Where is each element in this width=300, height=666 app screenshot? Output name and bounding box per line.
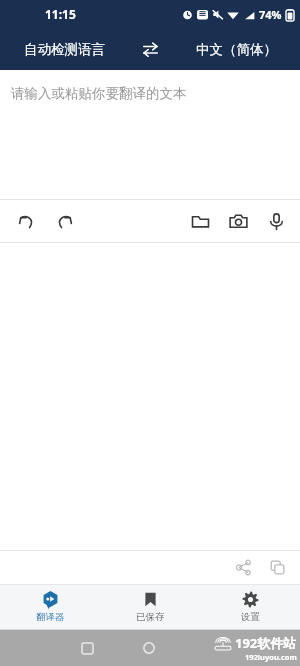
button[interactable]: Voice input <box>257 202 295 240</box>
staticText: 192luyou.com <box>245 652 297 662</box>
staticText: 中文（简体） <box>196 41 277 58</box>
button[interactable]: 中文（简体） <box>172 28 300 70</box>
button[interactable]: Open file <box>181 202 219 240</box>
staticText: 自动检测语言 <box>24 41 105 58</box>
button[interactable]: Copy <box>260 551 294 584</box>
button[interactable]: Redo <box>45 202 83 240</box>
button[interactable]: 请输入或粘贴你要翻译的文本 <box>0 70 300 199</box>
staticText: 翻译器 <box>36 611 65 623</box>
button[interactable]: Recents <box>82 643 93 654</box>
button[interactable]: Share <box>226 551 260 584</box>
button[interactable]: 自动检测语言 <box>0 28 128 70</box>
button[interactable]: Swap languages <box>128 28 172 70</box>
staticText: 192软件站 <box>235 634 297 652</box>
button[interactable]: 已保存 <box>100 585 200 629</box>
button[interactable]: Undo <box>7 202 45 240</box>
staticText: 74% <box>259 7 282 22</box>
staticText: 请输入或粘贴你要翻译的文本 <box>11 85 187 102</box>
staticText: 11:15 <box>45 6 76 22</box>
button[interactable]: Home <box>143 642 155 654</box>
staticText: 设置 <box>241 611 260 623</box>
button[interactable]: Camera <box>219 202 257 240</box>
button[interactable]: 翻译器 <box>0 585 100 629</box>
staticText: 已保存 <box>136 611 165 623</box>
button[interactable]: 设置 <box>200 585 300 629</box>
